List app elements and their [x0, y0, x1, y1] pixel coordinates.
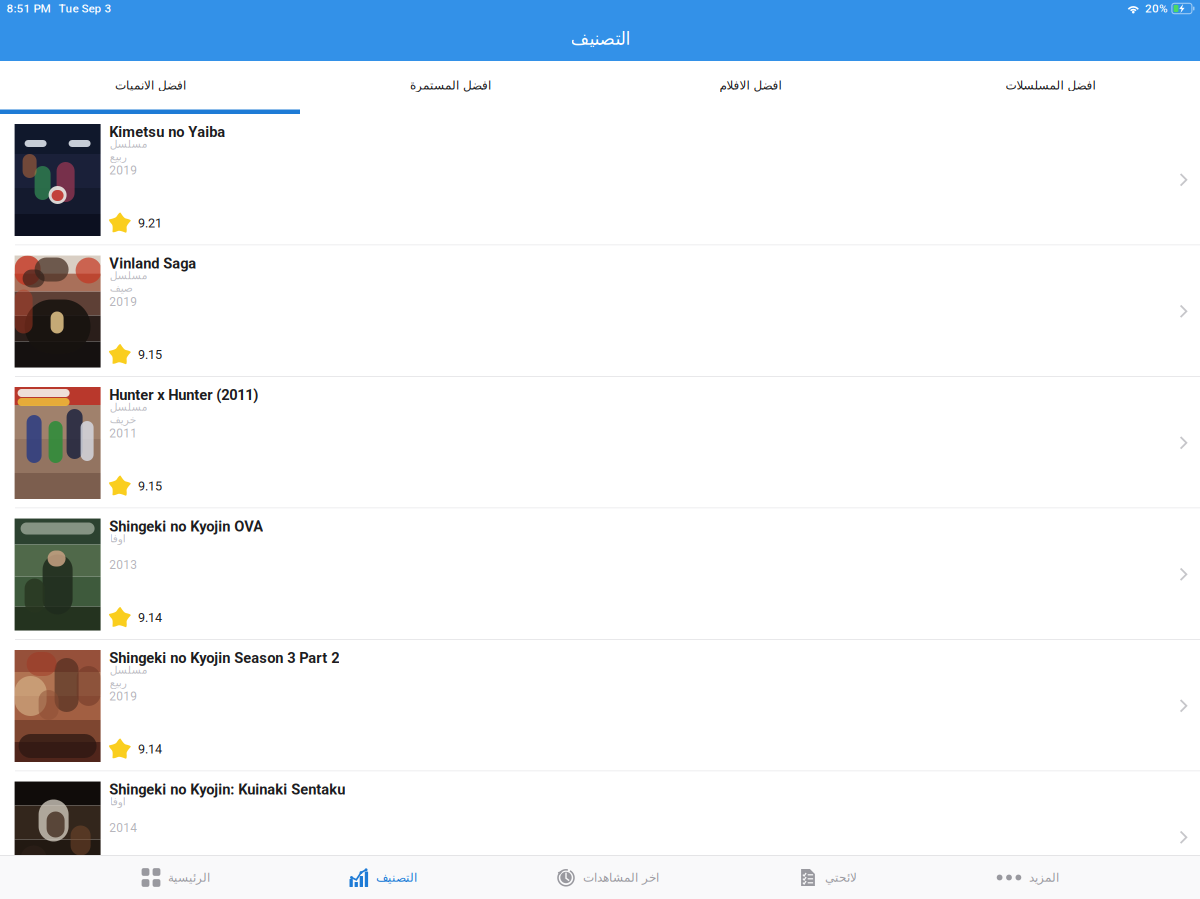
staticText: افضل المستمرة — [409, 78, 490, 92]
staticText: اوفا — [109, 532, 125, 545]
staticText: اخر المشاهدات — [582, 870, 658, 884]
button[interactable]: افضل المسلسلات — [900, 61, 1200, 109]
staticText: مسلسل — [109, 138, 147, 150]
staticText: 9.21 — [138, 216, 162, 231]
button[interactable]: افضل الانميات — [0, 61, 300, 109]
staticText: افضل المسلسلات — [1005, 78, 1095, 92]
staticText: الرئيسية — [167, 870, 209, 884]
button[interactable]: افضل الافلام — [600, 61, 900, 109]
button[interactable]: Hunter x Hunter (2011) — [0, 377, 1200, 508]
staticText: التصنيف — [570, 28, 630, 49]
staticText: ربيع — [109, 150, 126, 163]
staticText: التصنيف — [375, 870, 416, 884]
staticText: Shingeki no Kyojin Season 3 Part 2 — [109, 649, 339, 667]
button[interactable]: Vinland Saga — [0, 245, 1200, 377]
staticText: Hunter x Hunter (2011) — [109, 386, 258, 404]
button[interactable]: اخر المشاهدات — [556, 856, 658, 899]
staticText: افضل الافلام — [719, 78, 781, 92]
staticText: Kimetsu no Yaiba — [109, 123, 225, 141]
staticText: خريف — [109, 413, 136, 426]
button[interactable]: المزيد — [996, 856, 1058, 899]
button[interactable]: Shingeki no Kyojin Season 3 Part 2 — [0, 640, 1200, 771]
staticText: مسلسل — [109, 401, 147, 413]
staticText: 2014 — [109, 821, 137, 835]
staticText: مسلسل — [109, 269, 147, 282]
staticText: 2019 — [109, 295, 137, 309]
staticText: افضل الانميات — [114, 78, 185, 92]
button[interactable]: لائحتي — [798, 856, 856, 899]
staticText: 9.14 — [138, 610, 162, 625]
staticText: Vinland Saga — [109, 255, 196, 272]
staticText: Shingeki no Kyojin: Kuinaki Sentaku — [109, 781, 345, 798]
staticText: المزيد — [1028, 870, 1058, 884]
button[interactable]: التصنيف — [349, 856, 416, 899]
staticText: 20% — [1145, 2, 1168, 15]
staticText: ربيع — [109, 676, 126, 689]
staticText: صيف — [109, 282, 132, 294]
button[interactable]: الرئيسية — [141, 856, 209, 899]
staticText: مسلسل — [109, 664, 147, 676]
staticText: 9.15 — [138, 479, 162, 494]
staticText: اوفا — [109, 795, 125, 808]
button[interactable]: Kimetsu no Yaiba — [0, 114, 1200, 245]
staticText: Tue Sep 3 — [58, 2, 111, 15]
staticText: 2019 — [109, 163, 137, 178]
staticText: 8:51 PM — [6, 2, 50, 15]
staticText: 2013 — [109, 558, 137, 572]
staticText: Shingeki no Kyojin OVA — [109, 518, 263, 535]
staticText: 2019 — [109, 689, 137, 704]
staticText: لائحتي — [824, 870, 856, 884]
button[interactable]: افضل المستمرة — [300, 61, 600, 109]
staticText: 2011 — [109, 426, 137, 441]
staticText: 9.15 — [138, 347, 162, 362]
staticText: 9.14 — [138, 742, 162, 757]
button[interactable]: Shingeki no Kyojin OVA — [0, 508, 1200, 640]
button[interactable]: Shingeki no Kyojin: Kuinaki Sentaku — [0, 771, 1200, 899]
